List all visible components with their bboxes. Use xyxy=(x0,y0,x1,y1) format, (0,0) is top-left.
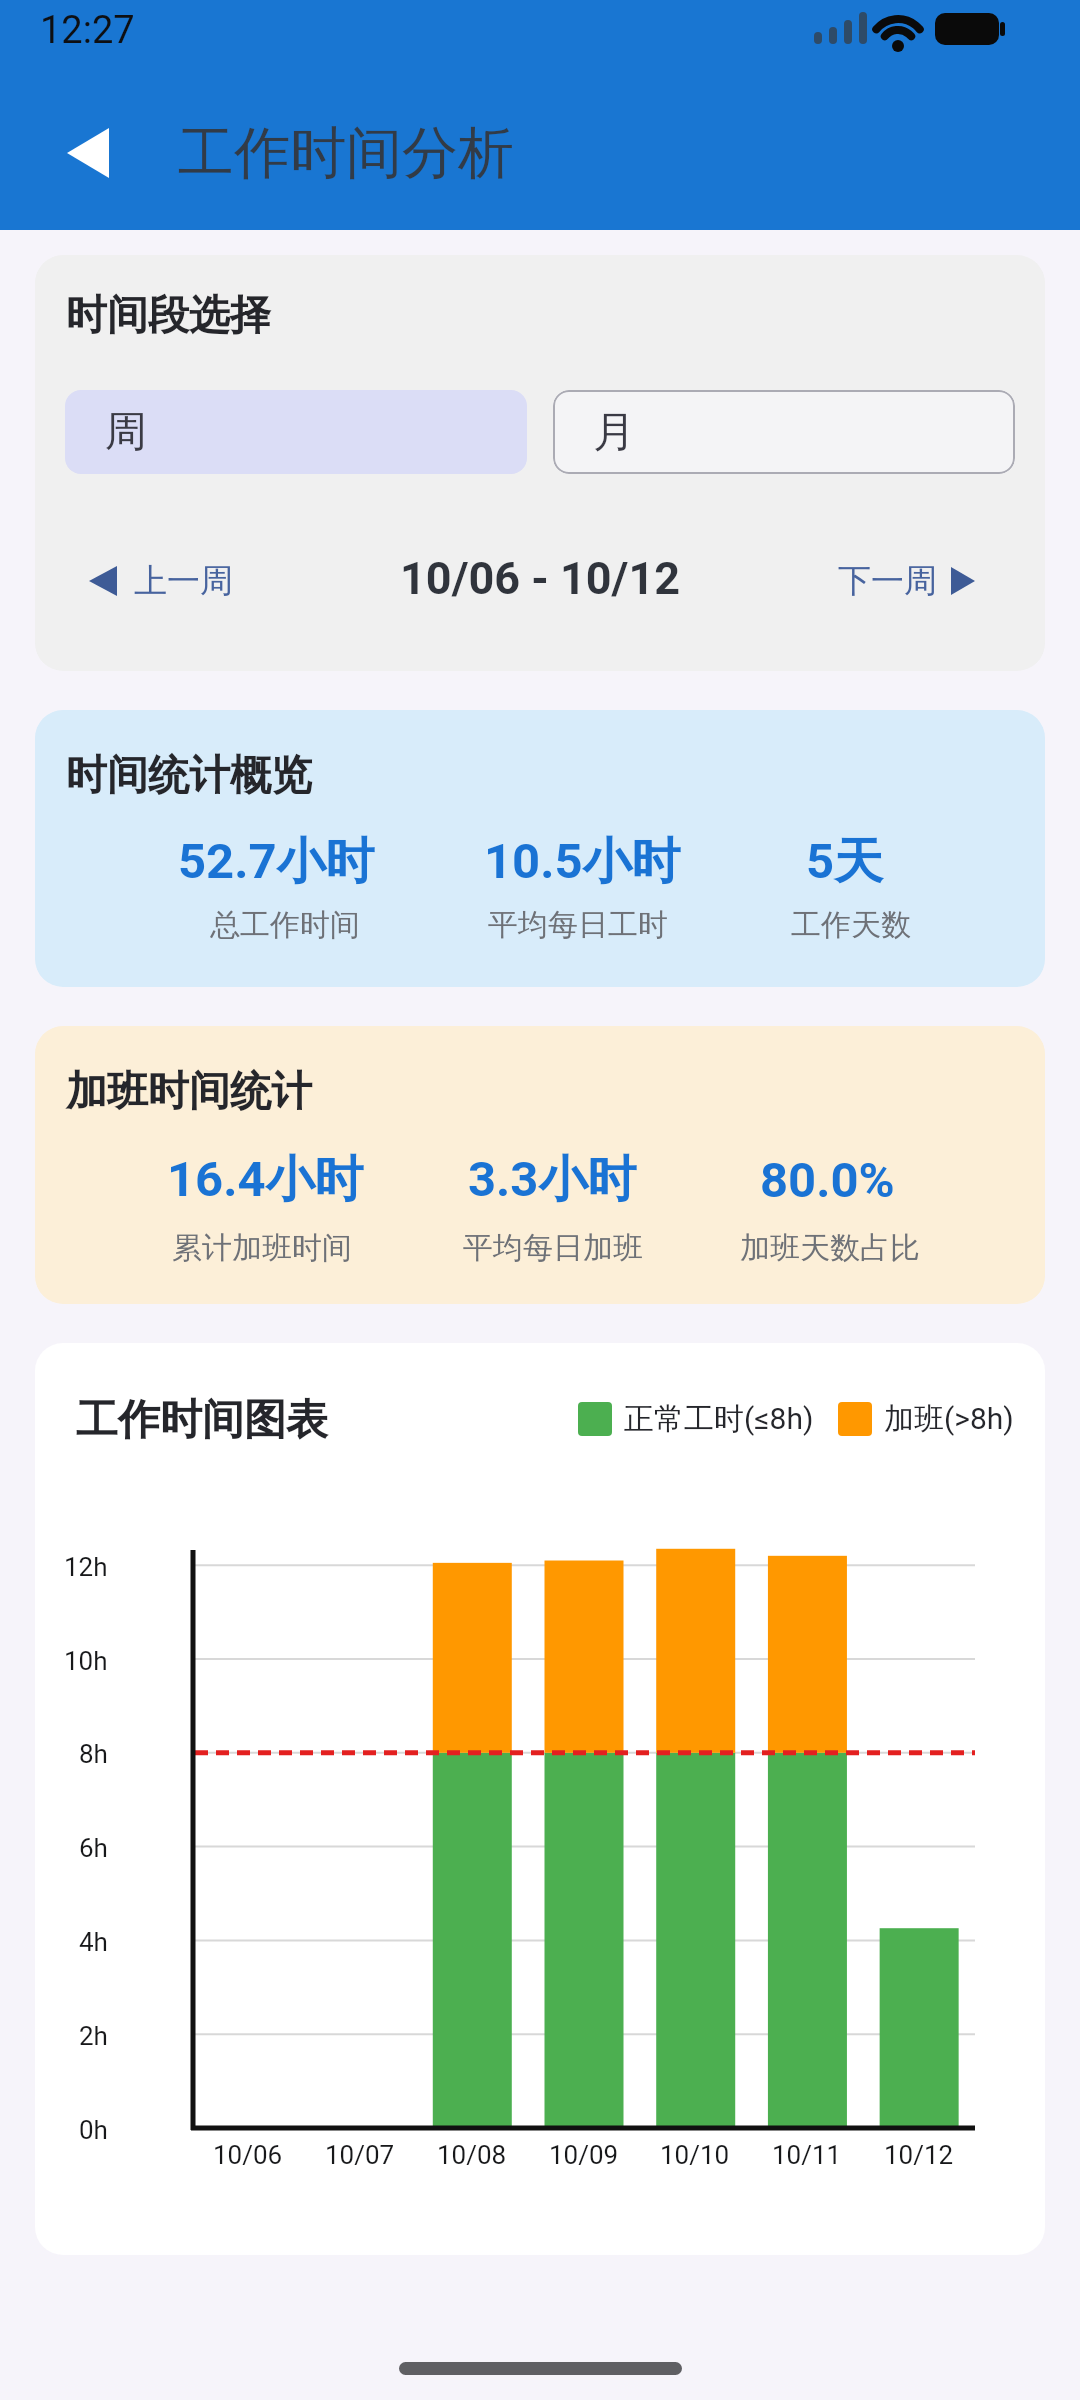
staticText: 正常工时(≤8h) xyxy=(624,1400,814,1438)
staticText: 10/10 xyxy=(660,2140,730,2170)
staticText: 5天 xyxy=(806,831,884,893)
staticText: 下一周 xyxy=(838,560,937,602)
button[interactable]: 周 xyxy=(65,390,527,474)
button[interactable] xyxy=(48,113,128,193)
staticText: 工作天数 xyxy=(791,906,911,944)
staticText: 累计加班时间 xyxy=(172,1229,352,1267)
staticText: 平均每日加班 xyxy=(463,1229,643,1267)
staticText: 周 xyxy=(105,406,147,459)
staticText: 上一周 xyxy=(134,560,233,602)
button[interactable]: 月 xyxy=(553,390,1015,474)
staticText: 10/06 xyxy=(213,2140,283,2170)
staticText: 4h xyxy=(79,1927,108,1957)
staticText: 加班时间统计 xyxy=(66,1066,312,1118)
staticText: 10/08 xyxy=(437,2140,507,2170)
staticText: 8h xyxy=(79,1739,108,1769)
staticText: 0h xyxy=(79,2115,108,2145)
staticText: 工作时间图表 xyxy=(76,1394,328,1447)
staticText: 6h xyxy=(79,1833,108,1863)
staticText: 月 xyxy=(593,406,635,459)
staticText: 10/11 xyxy=(772,2140,842,2170)
staticText: 总工作时间 xyxy=(210,906,360,944)
button[interactable]: 下一周 xyxy=(838,551,975,611)
staticText: 2h xyxy=(79,2021,108,2051)
staticText: 加班(>8h) xyxy=(884,1400,1014,1438)
staticText: 10/07 xyxy=(325,2140,395,2170)
staticText: 10/06 - 10/12 xyxy=(400,552,681,605)
staticText: 12h xyxy=(64,1552,108,1582)
staticText: 10h xyxy=(64,1646,108,1676)
staticText: 3.3小时 xyxy=(468,1149,637,1211)
staticText: 时间统计概览 xyxy=(66,750,312,802)
staticText: 工作时间分析 xyxy=(178,118,514,186)
staticText: 16.4小时 xyxy=(167,1149,364,1211)
staticText: 加班天数占比 xyxy=(740,1229,920,1267)
staticText: 10.5小时 xyxy=(484,831,681,893)
staticText: 10/12 xyxy=(884,2140,954,2170)
staticText: 52.7小时 xyxy=(178,831,375,893)
staticText: 时间段选择 xyxy=(66,290,271,342)
staticText: 80.0% xyxy=(760,1152,895,1209)
staticText: 10/09 xyxy=(549,2140,619,2170)
staticText: 12:27 xyxy=(40,8,135,53)
staticText: 平均每日工时 xyxy=(488,906,668,944)
button[interactable]: 上一周 xyxy=(89,551,233,611)
